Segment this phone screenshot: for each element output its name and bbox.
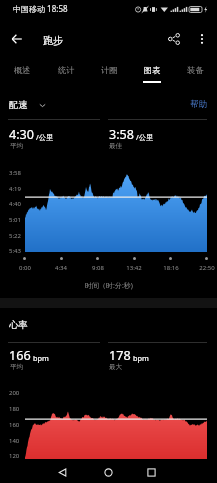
staticText: 图表 (144, 65, 161, 75)
button[interactable]: Recent apps (137, 461, 165, 483)
staticText: 4:40 (9, 200, 21, 208)
staticText: 平均 (10, 142, 24, 150)
staticText: 140 (9, 437, 20, 445)
staticText: /公里 (36, 132, 54, 142)
button[interactable]: 概述 (0, 58, 44, 81)
staticText: 3:58 (109, 126, 134, 143)
staticText: 166 (9, 347, 31, 364)
staticText: 178 (109, 347, 131, 364)
staticText: 160 (9, 421, 20, 429)
staticText: 5:43 (9, 247, 21, 255)
button[interactable]: Share (161, 26, 187, 52)
staticText: 中国移动 18:58 (13, 3, 68, 14)
staticText: 13:42 (126, 264, 142, 272)
staticText: /公里 (136, 132, 154, 142)
staticText: 心率 (9, 319, 28, 331)
button[interactable]: Home (94, 461, 122, 483)
staticText: bpm (33, 353, 49, 363)
button[interactable]: 图表 (131, 58, 174, 81)
staticText: 最佳 (109, 142, 123, 150)
staticText: 计圈 (101, 65, 118, 75)
staticText: 4:19 (9, 185, 21, 193)
button[interactable]: Back (48, 461, 76, 483)
staticText: bpm (133, 353, 149, 363)
staticText: 0:00 (19, 264, 31, 272)
staticText: 4:30 (9, 126, 34, 143)
button[interactable]: 帮助 (190, 99, 207, 110)
staticText: 帮助 (190, 99, 207, 110)
staticText: 180 (9, 405, 20, 413)
staticText: 统计 (58, 65, 75, 75)
staticText: 22:50 (199, 264, 215, 272)
staticText: 9:08 (92, 264, 104, 272)
staticText: 时间（时:分:秒) (85, 281, 133, 291)
staticText: 配速 (9, 99, 28, 111)
staticText: 5:22 (9, 232, 21, 240)
staticText: 3:58 (9, 169, 21, 177)
button[interactable]: More options (189, 26, 215, 52)
staticText: 5:01 (9, 216, 21, 224)
staticText: 平均 (10, 363, 24, 371)
staticText: 120 (9, 452, 20, 460)
staticText: 概述 (14, 65, 31, 75)
staticText: 最大 (109, 363, 123, 371)
staticText: 18:16 (163, 264, 179, 272)
staticText: 4:34 (55, 264, 67, 272)
staticText: 装备 (187, 65, 204, 75)
button[interactable]: Back (4, 26, 30, 52)
staticText: 200 (9, 389, 20, 397)
button[interactable]: 装备 (174, 58, 217, 81)
staticText: 跑步 (43, 34, 63, 47)
button[interactable]: 计圈 (88, 58, 131, 81)
button[interactable]: 统计 (44, 58, 88, 81)
